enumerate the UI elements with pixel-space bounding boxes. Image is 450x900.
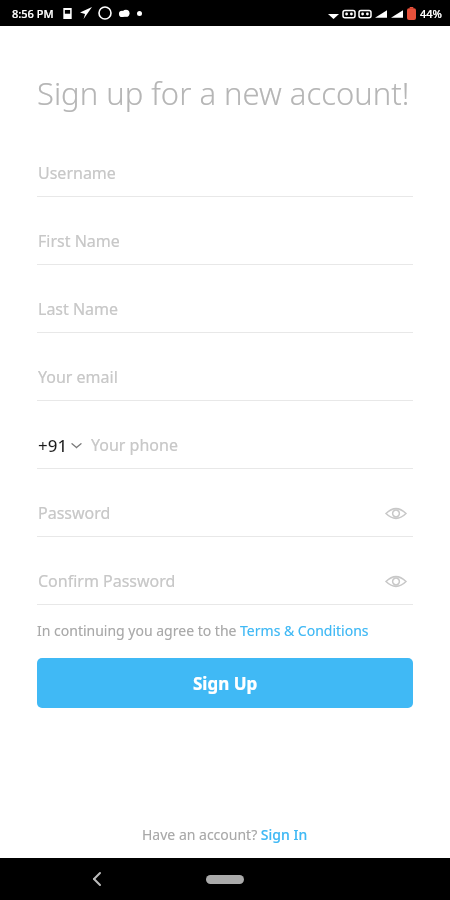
button[interactable]: Show confirm password	[379, 564, 413, 598]
button[interactable]: Last Name	[37, 286, 413, 333]
staticText: Password	[38, 502, 379, 524]
button[interactable]: First Name	[37, 218, 413, 265]
staticText: Sign up for a new account!	[37, 72, 410, 114]
staticText: Your email	[38, 366, 413, 388]
staticText: Your phone	[91, 434, 413, 456]
staticText: Sign Up	[193, 672, 258, 695]
button[interactable]: Password	[37, 490, 413, 537]
staticText: 8:56 PM	[12, 6, 54, 21]
button[interactable]: Home	[206, 875, 244, 884]
staticText: First Name	[38, 230, 413, 252]
button[interactable]: +91	[38, 434, 91, 457]
button[interactable]: Have an account? Sign In	[142, 825, 308, 844]
button[interactable]: Show password	[379, 496, 413, 530]
button[interactable]: In continuing you agree to the Terms & C…	[37, 621, 369, 640]
staticText: Confirm Password	[38, 570, 379, 592]
button[interactable]: Confirm Password	[37, 558, 413, 605]
staticText: Username	[38, 162, 413, 184]
button[interactable]: Sign Up	[37, 658, 413, 708]
button[interactable]: Username	[37, 150, 413, 197]
staticText: 44%	[420, 6, 442, 21]
button[interactable]: Your email	[37, 354, 413, 401]
button[interactable]: Back	[82, 864, 112, 894]
button[interactable]: +91	[37, 422, 413, 469]
staticText: +91	[38, 434, 68, 457]
staticText: Last Name	[38, 298, 413, 320]
